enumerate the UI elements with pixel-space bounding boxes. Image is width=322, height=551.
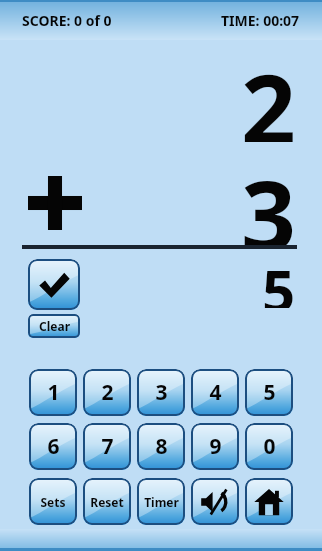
staticText: 5	[263, 378, 276, 407]
button[interactable]: 6	[29, 423, 77, 470]
staticText: Reset	[90, 494, 124, 510]
button[interactable]: Home	[245, 478, 293, 525]
staticText: 8	[155, 432, 168, 461]
button[interactable]: Reset	[83, 478, 131, 525]
button[interactable]: 7	[83, 423, 131, 470]
staticText: 7	[101, 432, 114, 461]
staticText: 6	[47, 432, 60, 461]
staticText: Clear	[39, 318, 70, 334]
button[interactable]: Clear	[28, 314, 80, 338]
staticText: 2	[241, 42, 296, 142]
button[interactable]: 1	[29, 369, 77, 416]
staticText: 0	[263, 432, 276, 461]
staticText: 2	[101, 378, 114, 407]
button[interactable]: 0	[245, 423, 293, 470]
button[interactable]: Timer	[137, 478, 185, 525]
staticText: 9	[209, 432, 222, 461]
button[interactable]: Check answer	[28, 259, 80, 310]
button[interactable]: 2	[83, 369, 131, 416]
button[interactable]: 9	[191, 423, 239, 470]
staticText: 3	[241, 148, 296, 248]
staticText: 3	[155, 378, 168, 407]
staticText: Sets	[40, 494, 66, 510]
button[interactable]: Mute sound	[191, 478, 239, 525]
button[interactable]: 8	[137, 423, 185, 470]
staticText: 5	[262, 250, 296, 308]
button[interactable]: 4	[191, 369, 239, 416]
staticText: TIME: 00:07	[221, 11, 300, 30]
staticText: 4	[209, 378, 222, 407]
button[interactable]: 3	[137, 369, 185, 416]
button[interactable]: Sets	[29, 478, 77, 525]
staticText: 1	[47, 378, 60, 407]
staticText: Timer	[144, 494, 179, 510]
staticText: SCORE: 0 of 0	[22, 11, 112, 30]
button[interactable]: 5	[245, 369, 293, 416]
